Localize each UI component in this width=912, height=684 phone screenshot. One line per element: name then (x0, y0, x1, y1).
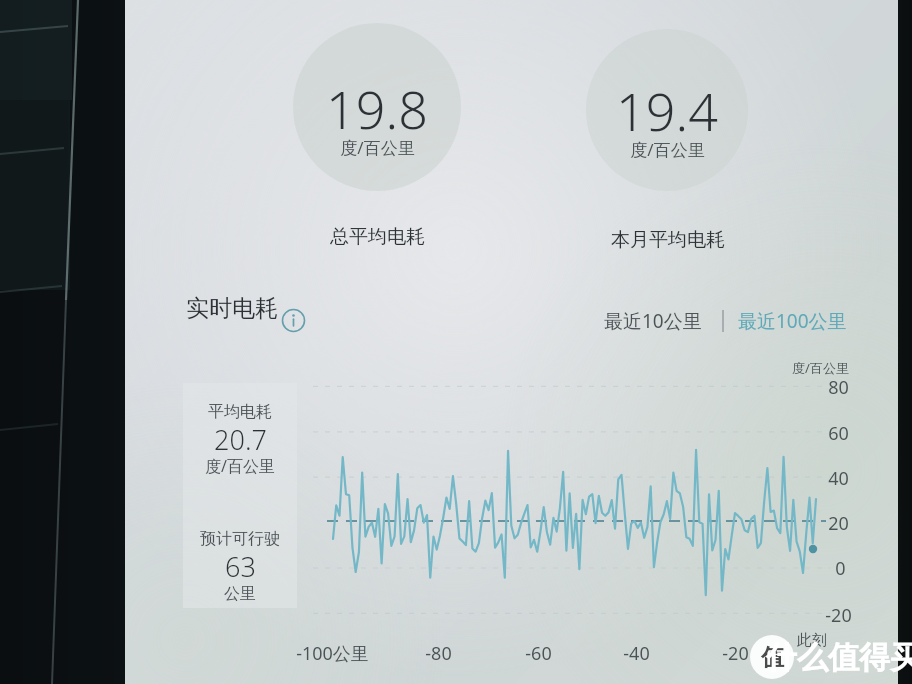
staticText: 63 (225, 548, 256, 585)
staticText: 度/百公里 (340, 136, 415, 159)
staticText: 实时电耗 (186, 294, 278, 323)
staticText: -20 (825, 603, 852, 628)
staticText: 预计可行驶 (200, 529, 280, 549)
staticText: 80 (828, 375, 849, 400)
staticText: 本月平均电耗 (611, 228, 725, 252)
button[interactable]: 总平均电耗 (300, 220, 455, 254)
staticText: 20.7 (214, 421, 267, 458)
button[interactable]: 本月平均电耗 (588, 223, 748, 257)
staticText: 度/百公里 (630, 138, 705, 161)
staticText: 最近10公里 (604, 308, 702, 334)
staticText: 平均电耗 (208, 402, 272, 422)
staticText: 值 (761, 643, 784, 672)
staticText: 总平均电耗 (330, 225, 425, 249)
staticText: 最近100公里 (738, 308, 847, 334)
staticText: 40 (828, 466, 849, 491)
staticText: 此刻 (797, 631, 827, 650)
staticText: -80 (425, 641, 452, 666)
staticText: 19.8 (326, 73, 428, 144)
staticText: 度/百公里 (792, 359, 849, 377)
button[interactable]: 最近100公里 (738, 306, 860, 336)
staticText: 公里 (224, 584, 256, 604)
staticText: -60 (525, 641, 552, 666)
staticText: 60 (828, 421, 849, 446)
staticText: 0 (835, 556, 846, 581)
button[interactable]: 最近10公里 (604, 306, 716, 336)
button[interactable]: 信息 (281, 308, 306, 333)
staticText: 19.4 (616, 75, 718, 146)
staticText: -100公里 (296, 641, 369, 666)
staticText: -40 (623, 641, 650, 666)
staticText: 度/百公里 (205, 455, 275, 477)
staticText: 什么值得买 (766, 638, 912, 677)
staticText: -20 (722, 641, 749, 666)
staticText: 20 (828, 511, 849, 536)
